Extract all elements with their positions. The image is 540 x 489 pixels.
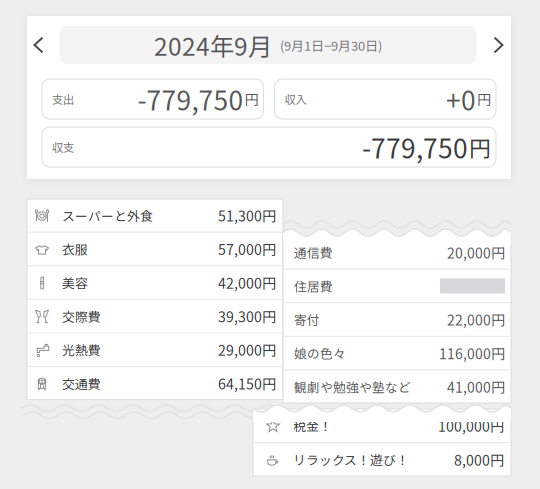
staticText: 円	[477, 89, 491, 109]
staticText: 円	[469, 131, 491, 163]
staticText: 22,000円	[447, 309, 505, 330]
staticText: 衣服	[62, 240, 88, 258]
button[interactable]: スーパーと外食	[27, 199, 283, 232]
staticText: 円	[244, 89, 258, 109]
staticText: 観劇や勉強や塾など	[294, 377, 411, 396]
button[interactable]: 寄付	[283, 303, 511, 336]
staticText: リラックス！遊び！	[293, 450, 409, 469]
staticText: 交通費	[62, 374, 101, 392]
staticText: +0	[446, 80, 476, 118]
button[interactable]: 美容	[27, 266, 283, 299]
staticText: 収支	[52, 139, 74, 155]
staticText: 税金！	[293, 416, 332, 435]
button[interactable]: リラックス！遊び！	[253, 443, 511, 476]
button[interactable]: Previous month	[27, 26, 59, 64]
staticText: 住居費	[294, 277, 333, 295]
staticText: 57,000円	[218, 239, 276, 259]
button[interactable]: 交通費	[27, 367, 283, 400]
staticText: 100,000円	[438, 415, 504, 436]
staticText: 42,000円	[218, 272, 276, 293]
button[interactable]: Next month	[476, 26, 510, 64]
button[interactable]: 娘の色々	[283, 337, 511, 369]
staticText: 支出	[52, 91, 74, 107]
button[interactable]: 通信費	[283, 236, 511, 269]
staticText: -779,750	[137, 80, 243, 118]
staticText: (9月1日−9月30日)	[280, 36, 382, 54]
button[interactable]: 2024年9月	[59, 26, 476, 64]
staticText: 収入	[284, 91, 306, 107]
staticText: 寄付	[294, 310, 320, 329]
button[interactable]: 交際費	[27, 300, 283, 332]
staticText: 64,150円	[218, 373, 276, 394]
staticText: -779,750	[362, 128, 468, 166]
staticText: 交際費	[62, 307, 101, 325]
staticText: 美容	[62, 273, 88, 292]
staticText: 41,000円	[447, 377, 505, 397]
staticText: 娘の色々	[294, 344, 346, 362]
button[interactable]: 光熱費	[27, 333, 283, 366]
button[interactable]: 衣服	[27, 233, 283, 265]
staticText: 光熱費	[62, 340, 101, 359]
staticText: 2024年9月	[154, 27, 272, 63]
staticText: 116,000円	[439, 343, 505, 363]
button[interactable]: 観劇や勉強や塾など	[283, 370, 511, 403]
button[interactable]: 税金！	[253, 409, 511, 442]
button[interactable]: 住居費	[283, 270, 511, 302]
staticText: 51,300円	[218, 205, 276, 226]
staticText: 39,300円	[218, 306, 276, 326]
staticText: 通信費	[294, 243, 333, 261]
staticText: 8,000円	[454, 449, 504, 470]
staticText: スーパーと外食	[62, 206, 153, 224]
staticText: 29,000円	[218, 339, 276, 360]
staticText: 20,000円	[447, 242, 505, 262]
